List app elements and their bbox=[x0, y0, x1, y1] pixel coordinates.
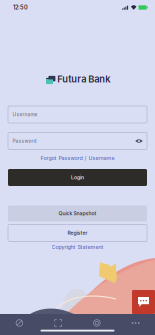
button[interactable]: Record bbox=[77, 316, 116, 330]
staticText: Futura Bank bbox=[57, 73, 110, 85]
staticText: Login bbox=[71, 174, 84, 180]
button[interactable]: Register bbox=[8, 224, 147, 241]
button[interactable]: Do not disturb bbox=[0, 316, 39, 330]
staticText: 12:50 bbox=[13, 4, 28, 11]
staticText: Forgot Password / Username bbox=[40, 155, 114, 161]
staticText: Username bbox=[12, 112, 37, 117]
staticText: Copyright Statement bbox=[51, 244, 103, 250]
button[interactable]: Forgot Password / Username bbox=[0, 154, 155, 162]
button[interactable]: More bbox=[116, 316, 155, 330]
staticText: Password bbox=[12, 138, 36, 144]
button[interactable]: Screenshot bbox=[39, 316, 78, 330]
button[interactable]: Quick Snapshot bbox=[8, 205, 147, 221]
button[interactable]: Login bbox=[8, 169, 147, 186]
staticText: Quick Snapshot bbox=[58, 210, 96, 216]
button[interactable]: Copyright Statement bbox=[0, 243, 155, 251]
staticText: Register bbox=[67, 230, 87, 236]
